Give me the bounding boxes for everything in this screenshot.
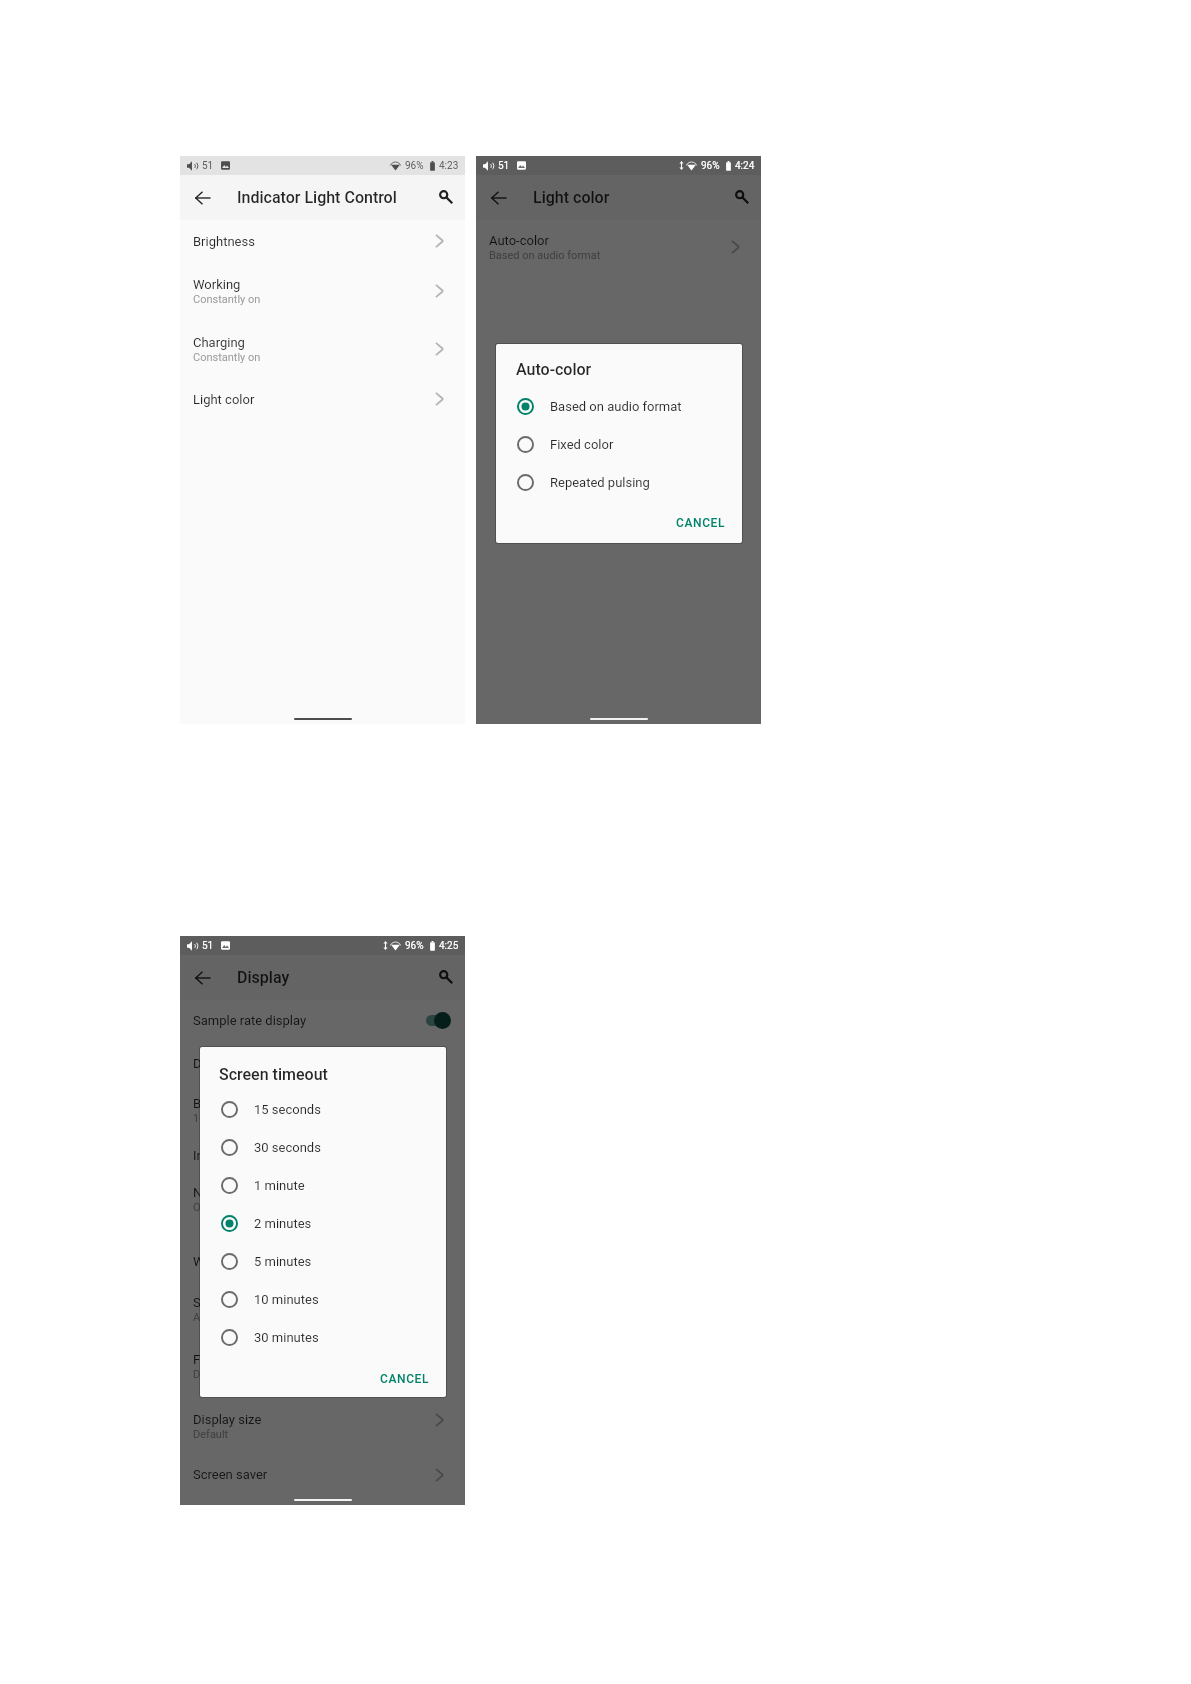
staticText: Fixed color <box>550 437 614 452</box>
button[interactable]: 30 minutes <box>200 1318 446 1356</box>
button[interactable]: Sample rate display <box>180 1000 465 1041</box>
staticText: Constantly on <box>193 351 261 364</box>
staticText: 4:25 <box>439 940 459 952</box>
button[interactable]: Navigate up <box>191 966 215 990</box>
button[interactable]: 30 seconds <box>200 1128 446 1166</box>
staticText: Constantly on <box>193 293 261 306</box>
button[interactable]: Navigate up <box>487 186 511 210</box>
button[interactable]: 5 minutes <box>200 1242 446 1280</box>
button[interactable]: Brightness <box>180 220 465 262</box>
staticText: 30 minutes <box>254 1330 319 1345</box>
button[interactable]: Based on audio format <box>496 387 742 425</box>
staticText: Default <box>193 1428 229 1441</box>
button[interactable]: 1 minute <box>200 1166 446 1204</box>
staticText: 51 <box>202 940 214 952</box>
button[interactable]: Working <box>180 262 465 320</box>
button[interactable]: Indicator Light Control <box>180 1133 465 1170</box>
staticText: CANCEL <box>676 516 726 530</box>
staticText: 51 <box>498 160 510 172</box>
staticText: Night mode <box>193 1185 261 1200</box>
staticText: 30 seconds <box>254 1140 321 1155</box>
staticText: Screen timeout <box>193 1295 281 1310</box>
staticText: Repeated pulsing <box>550 475 650 490</box>
staticText: 10 minutes <box>254 1292 319 1307</box>
staticText: 51 <box>202 160 214 172</box>
staticText: Off <box>193 1201 209 1214</box>
staticText: Default <box>193 1368 229 1381</box>
staticText: Wallpaper <box>193 1254 251 1269</box>
button[interactable]: Charging <box>180 320 465 378</box>
staticText: Sample rate display <box>193 1013 423 1028</box>
button[interactable]: CANCEL <box>668 510 734 536</box>
staticText: Font size <box>193 1352 246 1367</box>
staticText: CANCEL <box>380 1372 430 1386</box>
staticText: Display <box>237 968 290 987</box>
staticText: 5 minutes <box>254 1254 312 1269</box>
staticText: Screen saver <box>193 1467 268 1482</box>
button[interactable]: Repeated pulsing <box>496 463 742 501</box>
button[interactable]: Fixed color <box>496 425 742 463</box>
button[interactable]: CANCEL <box>372 1366 438 1392</box>
button[interactable]: Navigate up <box>191 186 215 210</box>
staticText: Brightness level <box>193 1096 285 1111</box>
staticText: Display <box>193 1056 235 1071</box>
staticText: Charging <box>193 335 245 350</box>
button[interactable]: 2 minutes <box>200 1204 446 1242</box>
button[interactable]: Font size <box>180 1337 465 1397</box>
button[interactable]: Display <box>180 1041 465 1081</box>
staticText: 10% <box>193 1112 214 1125</box>
staticText: Light color <box>193 392 255 407</box>
staticText: Based on audio format <box>550 399 682 414</box>
button[interactable]: Search <box>433 184 457 208</box>
staticText: 4:23 <box>439 160 459 172</box>
button[interactable]: Brightness level <box>180 1081 465 1133</box>
staticText: Auto-color <box>516 360 592 379</box>
staticText: 96% <box>405 940 424 952</box>
staticText: 1 minute <box>254 1178 305 1193</box>
staticText: 96% <box>405 160 424 172</box>
staticText: Based on audio format <box>489 249 601 262</box>
staticText: 4:24 <box>735 160 755 172</box>
staticText: Indicator Light Control <box>193 1148 322 1163</box>
button[interactable]: 10 minutes <box>200 1280 446 1318</box>
staticText: Screen timeout <box>219 1065 328 1084</box>
staticText: 15 seconds <box>254 1102 321 1117</box>
staticText: Indicator Light Control <box>237 188 397 207</box>
staticText: Light color <box>533 188 610 207</box>
staticText: After 2 minutes <box>193 1311 269 1324</box>
button[interactable]: Search <box>433 964 457 988</box>
button[interactable]: 15 seconds <box>200 1090 446 1128</box>
button[interactable]: Screen timeout <box>180 1280 465 1337</box>
staticText: Display size <box>193 1412 262 1427</box>
button[interactable]: Night mode <box>180 1170 465 1239</box>
staticText: 2 minutes <box>254 1216 312 1231</box>
button[interactable]: Light color <box>180 378 465 420</box>
staticText: Working <box>193 277 241 292</box>
staticText: Brightness <box>193 234 255 249</box>
button[interactable]: Display size <box>180 1397 465 1452</box>
button[interactable]: Screen saver <box>180 1452 465 1494</box>
staticText: Auto-color <box>489 233 549 248</box>
staticText: 96% <box>701 160 720 172</box>
button[interactable]: Wallpaper <box>180 1239 465 1280</box>
button[interactable]: Search <box>729 184 753 208</box>
button[interactable]: Auto-color <box>476 220 761 274</box>
